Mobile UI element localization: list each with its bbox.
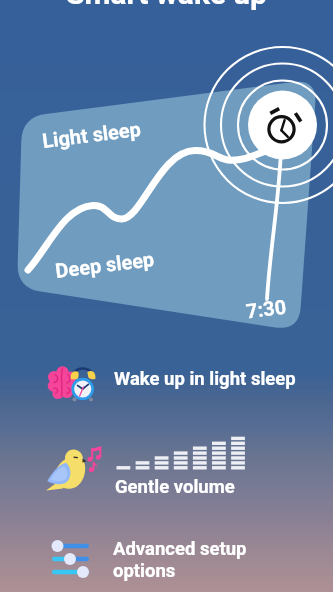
staticText: 7:30 [245,295,288,322]
button[interactable]: Advanced setup options [40,530,310,592]
staticText: Deep sleep [54,247,156,282]
button[interactable]: Gentle volume [40,442,310,498]
staticText: Smart wake up [0,0,333,11]
staticText: Advanced setup options [113,538,247,581]
staticText: Wake up in light sleep [114,368,296,390]
staticText: Gentle volume [115,476,235,498]
button[interactable]: Wake up in light sleep [40,352,310,408]
staticText: Light sleep [41,117,142,152]
